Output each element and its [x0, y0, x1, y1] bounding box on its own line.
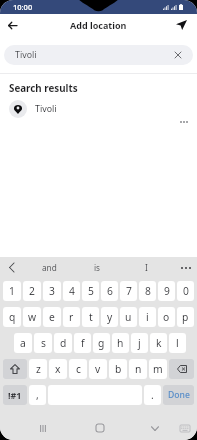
button[interactable]: I — [122, 257, 171, 278]
staticText: x — [55, 362, 61, 376]
button[interactable]: r — [63, 307, 80, 327]
staticText: is — [94, 262, 101, 273]
button[interactable]: t — [82, 307, 99, 327]
staticText: 10:00 — [13, 2, 33, 12]
button[interactable]: More suggestions — [174, 257, 197, 278]
staticText: r — [69, 310, 74, 324]
button[interactable]: s — [34, 333, 52, 353]
button[interactable]: . — [144, 385, 161, 405]
staticText: v — [95, 362, 101, 376]
button[interactable]: Back — [1, 14, 23, 36]
button[interactable]: j — [131, 333, 148, 353]
staticText: y — [107, 310, 113, 324]
button[interactable]: 3 — [43, 281, 61, 301]
staticText: 3 — [49, 284, 55, 298]
staticText: n — [135, 362, 142, 376]
button[interactable]: Previous suggestions — [0, 257, 23, 278]
staticText: o — [163, 310, 170, 324]
staticText: Add location — [70, 19, 127, 31]
button[interactable]: 6 — [101, 281, 118, 301]
staticText: b — [115, 362, 122, 376]
button[interactable]: 1 — [3, 281, 21, 301]
button[interactable]: Home — [90, 418, 110, 438]
button[interactable]: a — [14, 333, 32, 353]
staticText: 6 — [107, 284, 113, 298]
button[interactable]: k — [150, 333, 167, 353]
button[interactable]: 2 — [23, 281, 41, 301]
button[interactable]: 4 — [63, 281, 80, 301]
staticText: m — [153, 362, 163, 376]
button[interactable]: y — [101, 307, 118, 327]
button[interactable]: Switch keyboard — [175, 418, 195, 438]
button[interactable]: 9 — [158, 281, 175, 301]
staticText: s — [41, 336, 46, 350]
button[interactable]: m — [149, 359, 167, 379]
button[interactable]: Hide keyboard — [145, 418, 165, 438]
button[interactable]: 7 — [120, 281, 137, 301]
button[interactable]: q — [3, 307, 21, 327]
staticText: Tivoli — [15, 49, 37, 61]
button[interactable]: l — [169, 333, 186, 353]
button[interactable]: g — [93, 333, 110, 353]
staticText: 7 — [126, 284, 132, 298]
button[interactable]: Shift — [3, 359, 27, 379]
button[interactable]: and — [25, 257, 73, 278]
staticText: Tivoli — [35, 103, 57, 115]
button[interactable]: Clear — [171, 48, 185, 62]
staticText: 4 — [69, 284, 75, 298]
button[interactable]: u — [120, 307, 137, 327]
button[interactable]: e — [43, 307, 61, 327]
button[interactable]: is — [73, 257, 122, 278]
staticText: Search results — [9, 82, 78, 95]
staticText: I — [145, 262, 148, 273]
staticText: q — [9, 310, 16, 324]
button[interactable]: o — [158, 307, 175, 327]
button[interactable]: x — [49, 359, 67, 379]
staticText: u — [125, 310, 132, 324]
staticText: 8 — [145, 284, 151, 298]
button[interactable]: n — [129, 359, 147, 379]
staticText: d — [60, 336, 67, 350]
button[interactable]: 8 — [139, 281, 156, 301]
staticText: !#1 — [8, 389, 22, 401]
button[interactable]: v — [89, 359, 107, 379]
button[interactable]: h — [112, 333, 129, 353]
button[interactable]: w — [23, 307, 41, 327]
staticText: i — [146, 310, 149, 324]
button[interactable]: c — [69, 359, 87, 379]
button[interactable]: b — [109, 359, 127, 379]
button[interactable]: i — [139, 307, 156, 327]
button[interactable]: , — [29, 385, 46, 405]
staticText: , — [36, 388, 39, 402]
button[interactable]: Tivoli — [0, 98, 197, 120]
staticText: h — [117, 336, 124, 350]
staticText: 2 — [29, 284, 35, 298]
staticText: 9 — [164, 284, 170, 298]
button[interactable]: 5 — [82, 281, 99, 301]
button[interactable]: Use current location — [170, 14, 192, 36]
button[interactable]: 0 — [177, 281, 194, 301]
staticText: 0 — [183, 284, 189, 298]
button[interactable]: p — [177, 307, 194, 327]
button[interactable]: Done — [163, 385, 194, 405]
staticText: f — [81, 336, 85, 350]
staticText: j — [138, 336, 141, 350]
staticText: g — [98, 336, 105, 350]
button[interactable]: Tivoli — [4, 45, 193, 65]
button[interactable]: z — [29, 359, 47, 379]
staticText: a — [20, 336, 26, 350]
button[interactable]: d — [54, 333, 72, 353]
button[interactable]: Backspace — [169, 359, 194, 379]
staticText: k — [156, 336, 162, 350]
staticText: . — [151, 388, 154, 402]
button[interactable]: !#1 — [3, 385, 27, 405]
button[interactable]: Recents — [33, 418, 53, 438]
button[interactable]: f — [74, 333, 91, 353]
staticText: 1 — [9, 284, 15, 298]
button[interactable]: More options — [176, 114, 192, 130]
staticText: z — [36, 362, 41, 376]
staticText: w — [28, 310, 37, 324]
staticText: and — [42, 262, 57, 273]
staticText: l — [176, 336, 179, 350]
